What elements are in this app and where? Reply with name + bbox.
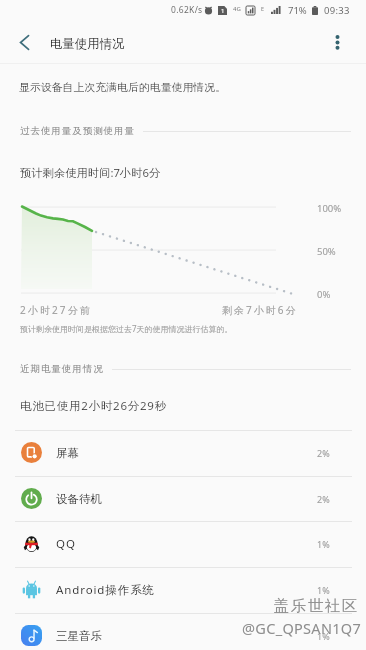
staticText: E: [261, 5, 265, 12]
staticText: 09:33: [324, 4, 350, 17]
staticText: 1%: [317, 584, 330, 596]
button[interactable]: More options: [317, 22, 357, 62]
staticText: 0%: [317, 288, 331, 301]
button[interactable]: 屏幕: [0, 430, 366, 475]
button[interactable]: 设备待机: [0, 476, 366, 521]
staticText: 预计剩余使用时间:7小时6分: [20, 165, 161, 180]
staticText: Android操作系统: [56, 582, 155, 598]
staticText: 电池已使用2小时26分29秒: [20, 398, 167, 414]
staticText: 近期电量使用情况: [20, 363, 104, 375]
staticText: 2%: [317, 493, 330, 505]
staticText: 4G: [233, 5, 241, 13]
button[interactable]: Back: [2, 20, 46, 64]
staticText: @GC_QPSAN1Q7: [242, 618, 362, 638]
staticText: 电量使用情况: [50, 36, 125, 52]
staticText: 设备待机: [56, 492, 102, 506]
staticText: 1%: [317, 538, 330, 550]
staticText: 预计剩余使用时间是根据您过去7天的使用情况进行估算的。: [20, 323, 233, 334]
staticText: 三星音乐: [56, 629, 102, 643]
staticText: 1: [221, 7, 225, 15]
staticText: 显示设备自上次充满电后的电量使用情况。: [19, 81, 227, 95]
staticText: 50%: [317, 245, 336, 258]
button[interactable]: 三星音乐: [0, 613, 366, 650]
staticText: 71%: [288, 4, 307, 17]
staticText: 盖乐世社区: [273, 596, 358, 616]
staticText: 2%: [317, 447, 330, 459]
staticText: 剩余7小时6分: [222, 303, 298, 317]
staticText: 1%: [317, 630, 330, 642]
staticText: 2小时27分前: [20, 303, 92, 317]
staticText: 屏幕: [56, 446, 79, 460]
button[interactable]: Android操作系统: [0, 567, 366, 612]
staticText: 100%: [317, 202, 342, 215]
staticText: 过去使用量及预测使用量: [20, 125, 135, 137]
button[interactable]: QQ: [0, 521, 366, 566]
staticText: QQ: [56, 536, 76, 552]
staticText: 0.62K/s: [171, 4, 203, 16]
